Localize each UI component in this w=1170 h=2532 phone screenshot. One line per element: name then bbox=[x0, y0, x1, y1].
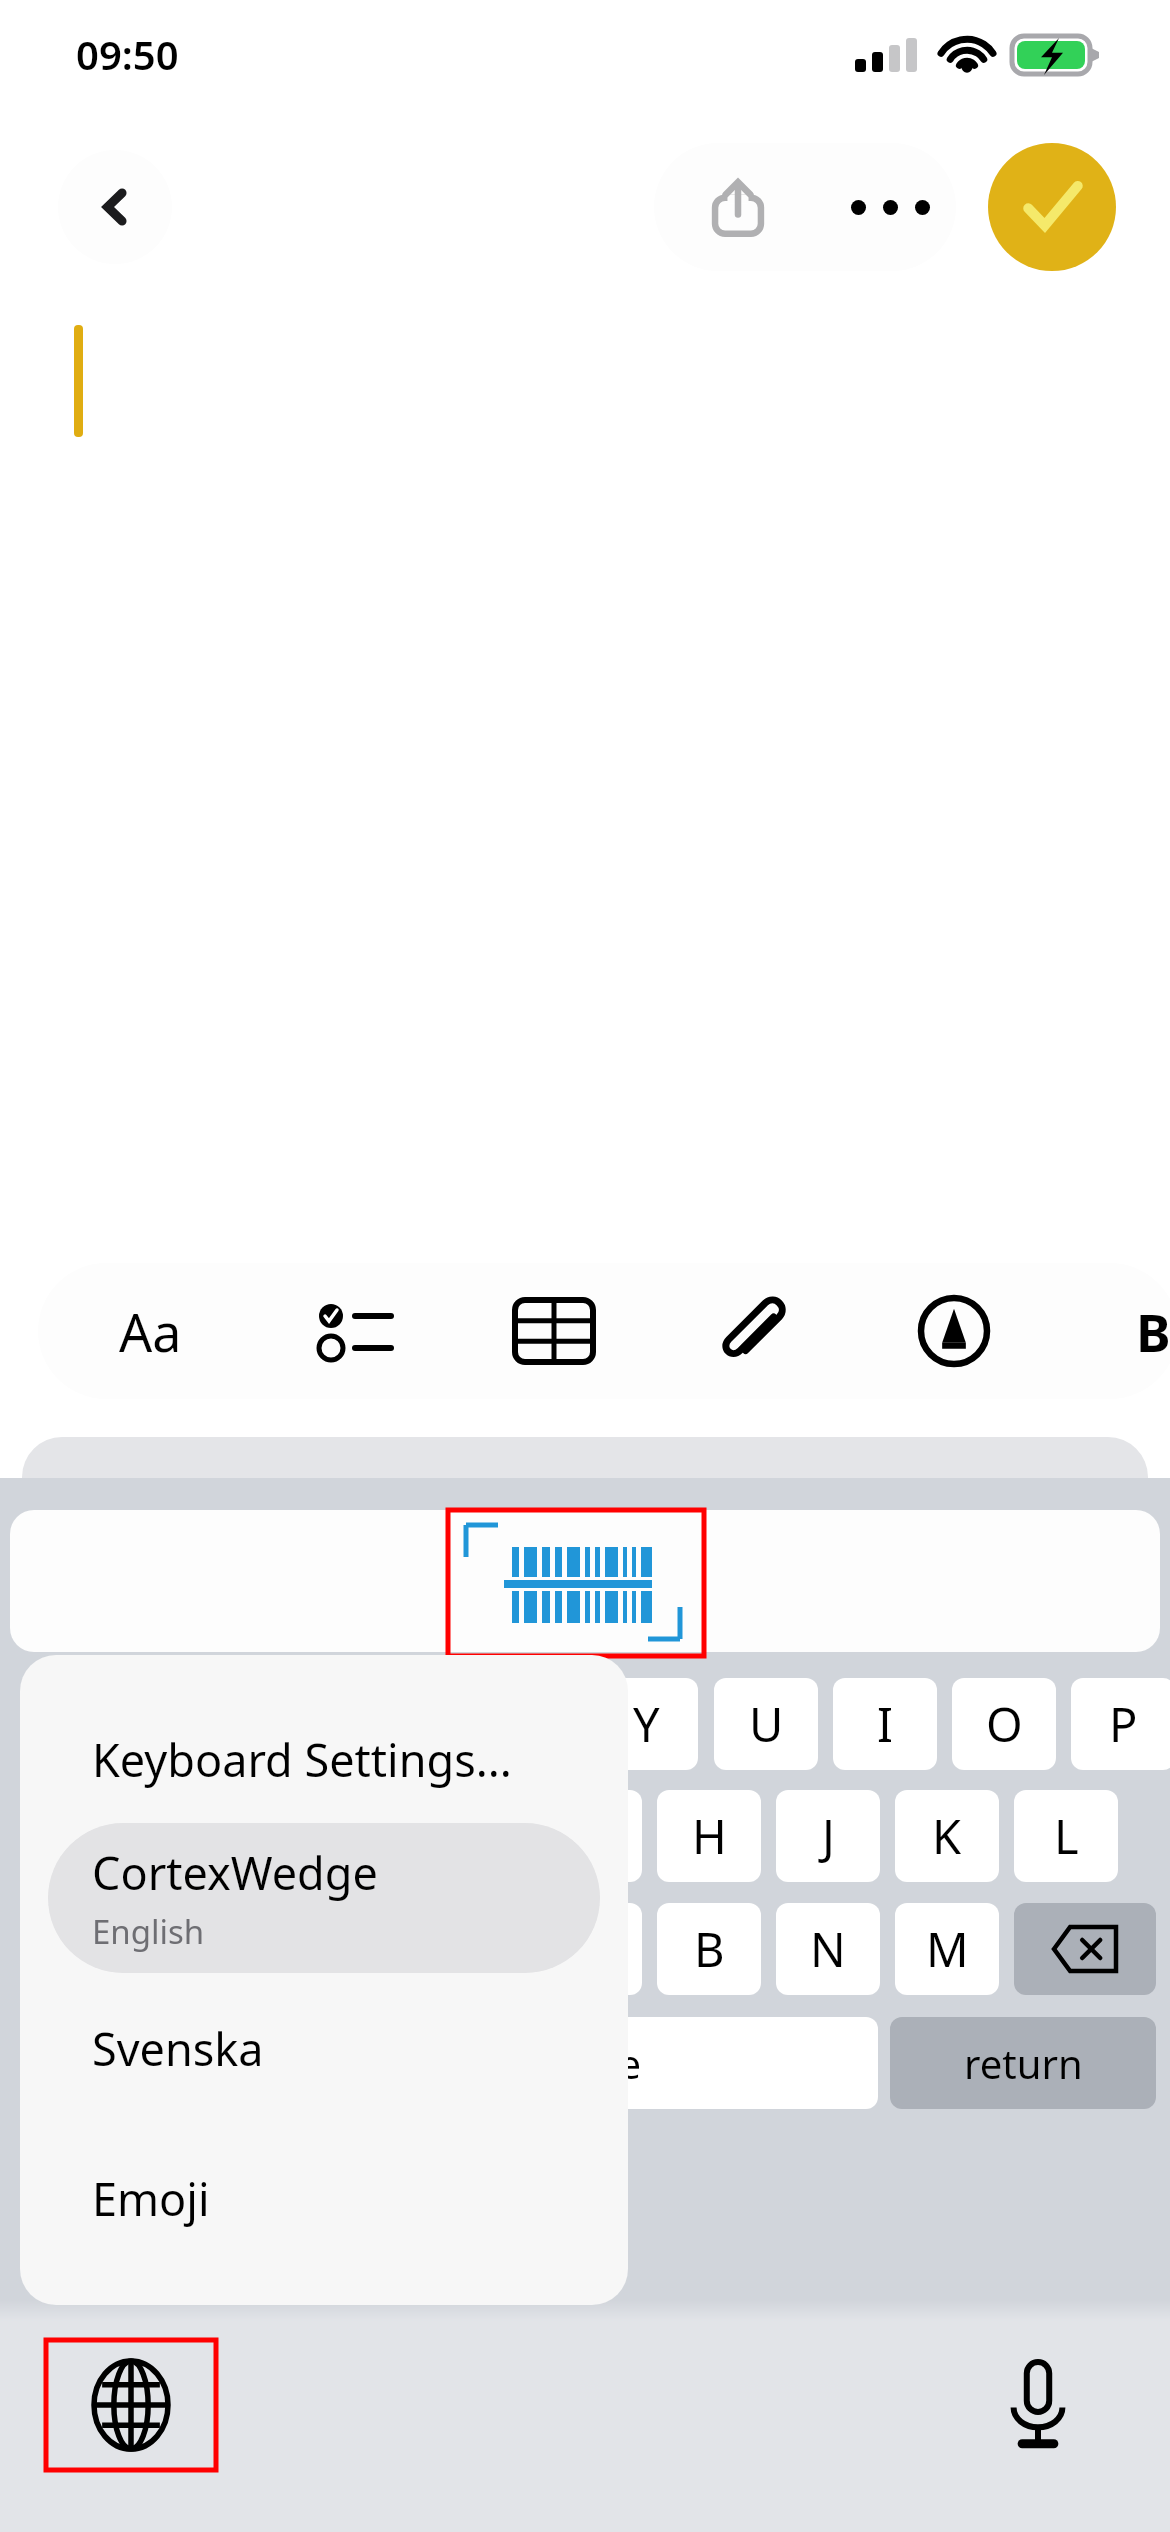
staticText: Emoji bbox=[92, 2168, 210, 2229]
button[interactable]: G bbox=[538, 1790, 642, 1882]
button[interactable]: Y bbox=[594, 1678, 698, 1770]
staticText: O bbox=[986, 1692, 1023, 1756]
button[interactable]: Done bbox=[988, 143, 1116, 271]
button[interactable]: Backspace bbox=[1014, 1903, 1156, 1995]
staticText: Y bbox=[633, 1692, 660, 1756]
button[interactable]: L bbox=[1014, 1790, 1118, 1882]
button[interactable]: J bbox=[776, 1790, 880, 1882]
button[interactable]: O bbox=[952, 1678, 1056, 1770]
button[interactable]: Aa bbox=[60, 1263, 240, 1399]
button[interactable]: P bbox=[1071, 1678, 1170, 1770]
button[interactable]: More options bbox=[824, 143, 956, 271]
button[interactable]: Svenska bbox=[20, 1973, 628, 2123]
staticText: K bbox=[932, 1804, 962, 1868]
button[interactable]: Table bbox=[468, 1263, 640, 1399]
staticText: J bbox=[822, 1804, 835, 1868]
staticText: 09:50 bbox=[76, 27, 179, 81]
button[interactable]: Scan barcode bbox=[446, 1508, 706, 1658]
button[interactable]: Attach bbox=[668, 1263, 840, 1399]
staticText: N bbox=[810, 1917, 846, 1981]
staticText: CortexWedge bbox=[92, 1842, 378, 1903]
button[interactable]: Markup bbox=[868, 1263, 1040, 1399]
staticText: M bbox=[926, 1917, 969, 1981]
staticText: V bbox=[576, 1917, 605, 1981]
staticText: English bbox=[92, 1909, 205, 1954]
staticText: G bbox=[573, 1804, 608, 1868]
button[interactable]: K bbox=[895, 1790, 999, 1882]
staticText: H bbox=[692, 1804, 727, 1868]
button[interactable]: H bbox=[657, 1790, 761, 1882]
button[interactable]: return bbox=[890, 2017, 1156, 2109]
staticText: L bbox=[1054, 1804, 1079, 1868]
button[interactable]: space bbox=[296, 2017, 878, 2109]
staticText: U bbox=[749, 1692, 784, 1756]
staticText: B bbox=[1136, 1296, 1170, 1367]
staticText: P bbox=[1109, 1692, 1138, 1756]
button[interactable]: M bbox=[895, 1903, 999, 1995]
button[interactable]: Dictate bbox=[962, 2340, 1114, 2470]
button[interactable]: CortexWedge bbox=[48, 1823, 600, 1973]
staticText: space bbox=[533, 2036, 641, 2090]
button[interactable]: I bbox=[833, 1678, 937, 1770]
button[interactable]: Checklist bbox=[268, 1263, 440, 1399]
button[interactable]: Keyboard Settings... bbox=[20, 1695, 628, 1823]
button[interactable]: B bbox=[657, 1903, 761, 1995]
staticText: Keyboard Settings... bbox=[92, 1729, 512, 1790]
button[interactable]: Back bbox=[58, 150, 172, 264]
staticText: Svenska bbox=[92, 2018, 264, 2079]
button[interactable]: Next keyboard bbox=[44, 2338, 218, 2472]
button[interactable]: V bbox=[538, 1903, 642, 1995]
button[interactable]: B bbox=[1064, 1263, 1170, 1399]
button[interactable]: U bbox=[714, 1678, 818, 1770]
button[interactable]: Share bbox=[672, 143, 804, 271]
staticText: I bbox=[877, 1692, 893, 1756]
staticText: Aa bbox=[119, 1296, 182, 1367]
staticText: return bbox=[964, 2036, 1083, 2090]
button[interactable]: N bbox=[776, 1903, 880, 1995]
staticText: B bbox=[694, 1917, 725, 1981]
button[interactable]: Emoji bbox=[20, 2123, 628, 2273]
